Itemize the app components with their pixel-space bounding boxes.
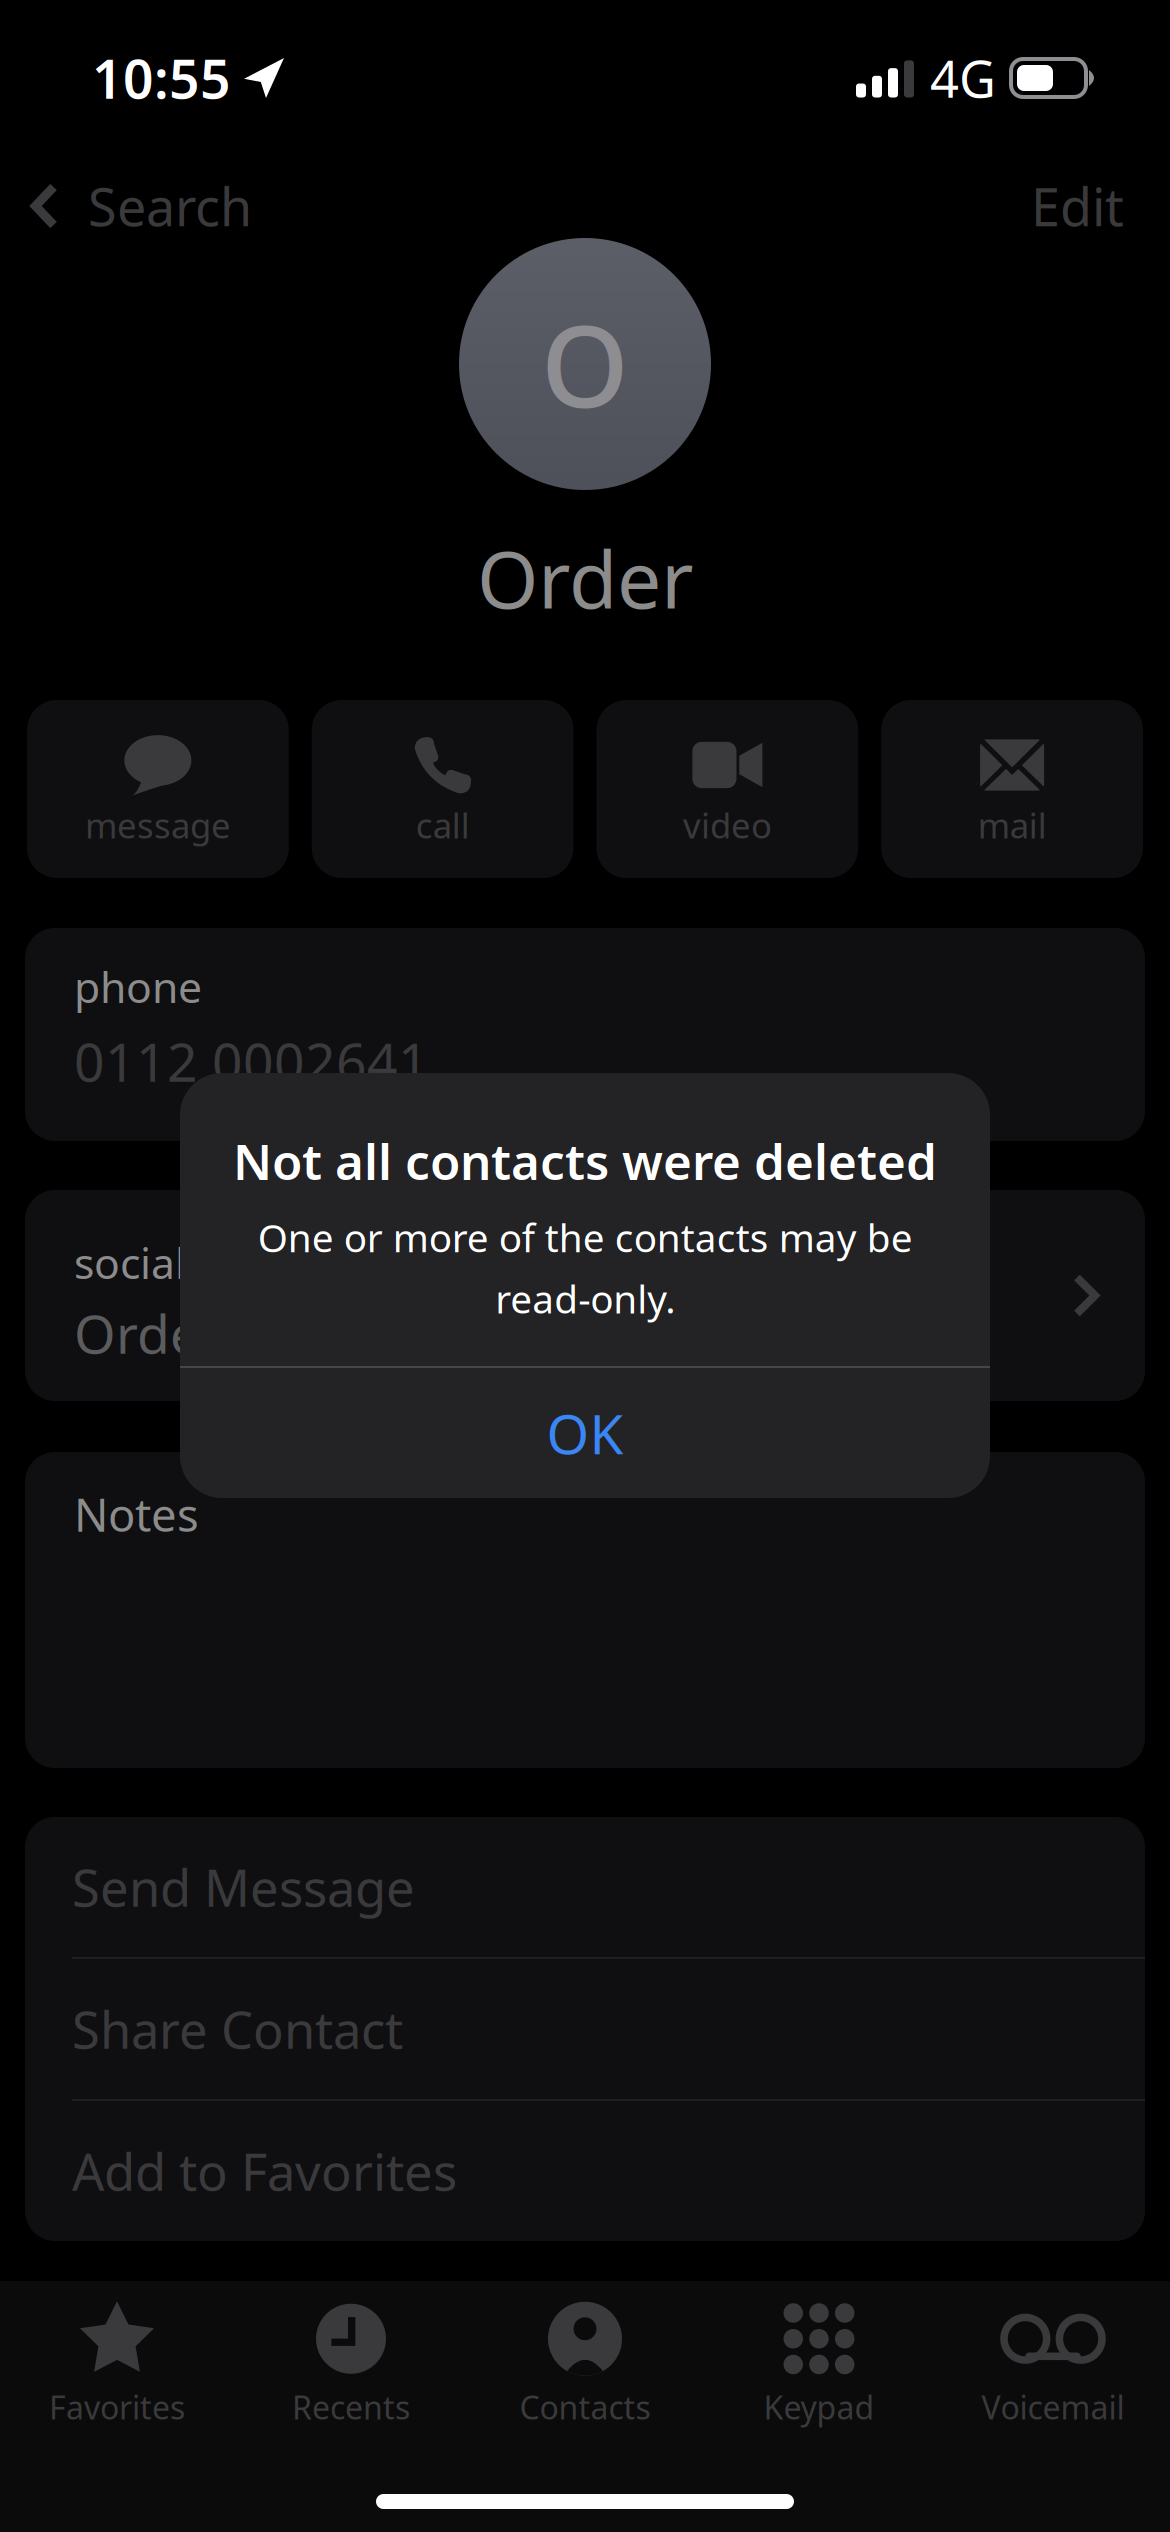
button[interactable]: social profile bbox=[25, 1190, 1145, 1401]
staticText: Share Contact bbox=[72, 1995, 403, 2063]
staticText: Contacts bbox=[519, 2386, 650, 2428]
button[interactable]: Notes bbox=[25, 1452, 1145, 1768]
staticText: Add to Favorites bbox=[72, 2137, 457, 2205]
staticText: phone bbox=[74, 958, 202, 1015]
staticText: Order bbox=[477, 526, 693, 630]
button[interactable]: Voicemail bbox=[936, 2299, 1170, 2429]
staticText: Edit bbox=[1031, 171, 1124, 241]
staticText: 0112 0002641 bbox=[74, 1026, 429, 1096]
button[interactable]: OK bbox=[180, 1368, 990, 1498]
staticText: message bbox=[85, 802, 231, 848]
staticText: Notes bbox=[74, 1484, 199, 1544]
staticText: 10:55 bbox=[92, 43, 231, 113]
staticText: Favorites bbox=[49, 2386, 185, 2428]
staticText: mail bbox=[978, 802, 1047, 848]
staticText: video bbox=[683, 802, 772, 848]
button[interactable]: Contacts bbox=[468, 2299, 702, 2429]
button[interactable]: Edit bbox=[1001, 153, 1170, 259]
staticText: 4G bbox=[930, 44, 996, 112]
button[interactable]: Search bbox=[0, 153, 276, 259]
button[interactable]: video bbox=[596, 700, 858, 878]
button[interactable]: mail bbox=[881, 700, 1143, 878]
staticText: Send Message bbox=[72, 1853, 415, 1921]
button[interactable]: Share Contact bbox=[25, 1959, 1145, 2099]
staticText: Not all contacts were deleted bbox=[233, 1128, 937, 1193]
staticText: Search bbox=[88, 171, 252, 241]
staticText: Order (Whatsapp) bbox=[74, 1298, 522, 1368]
button[interactable]: Keypad bbox=[702, 2299, 936, 2429]
button[interactable]: Recents bbox=[234, 2299, 468, 2429]
staticText: social profile bbox=[74, 1234, 327, 1291]
staticText: Recents bbox=[292, 2386, 410, 2428]
button[interactable]: Add to Favorites bbox=[25, 2101, 1145, 2241]
button[interactable]: Favorites bbox=[0, 2299, 234, 2429]
button[interactable]: Send Message bbox=[25, 1817, 1145, 1957]
staticText: call bbox=[416, 802, 470, 848]
staticText: One or more of the contacts may be read-… bbox=[257, 1211, 912, 1324]
staticText: Voicemail bbox=[981, 2386, 1124, 2428]
button[interactable]: phone bbox=[25, 928, 1145, 1141]
staticText: Keypad bbox=[763, 2386, 874, 2428]
button[interactable]: call bbox=[312, 700, 574, 878]
staticText: OK bbox=[546, 1397, 623, 1469]
staticText: O bbox=[541, 290, 629, 438]
button[interactable]: message bbox=[27, 700, 289, 878]
